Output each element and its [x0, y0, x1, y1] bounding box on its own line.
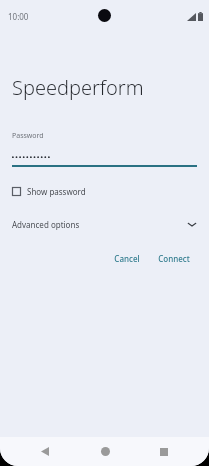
button[interactable]: Connect: [153, 250, 195, 267]
staticText: Speedperform: [12, 74, 144, 101]
staticText: Cancel: [114, 253, 140, 264]
staticText: 10:00: [8, 11, 29, 22]
staticText: Show password: [27, 186, 86, 197]
button[interactable]: Advanced options: [12, 216, 197, 233]
button[interactable]: Show password: [12, 184, 197, 199]
button[interactable]: Recent apps: [149, 437, 179, 466]
staticText: Password: [12, 131, 44, 141]
other: Expand advanced options: [187, 221, 197, 228]
staticText: Connect: [158, 253, 190, 264]
staticText: Advanced options: [12, 219, 187, 230]
button[interactable]: Home: [90, 437, 120, 466]
button[interactable]: Cancel: [109, 250, 145, 267]
button[interactable]: Back: [30, 437, 60, 466]
button[interactable]: [12, 150, 197, 162]
